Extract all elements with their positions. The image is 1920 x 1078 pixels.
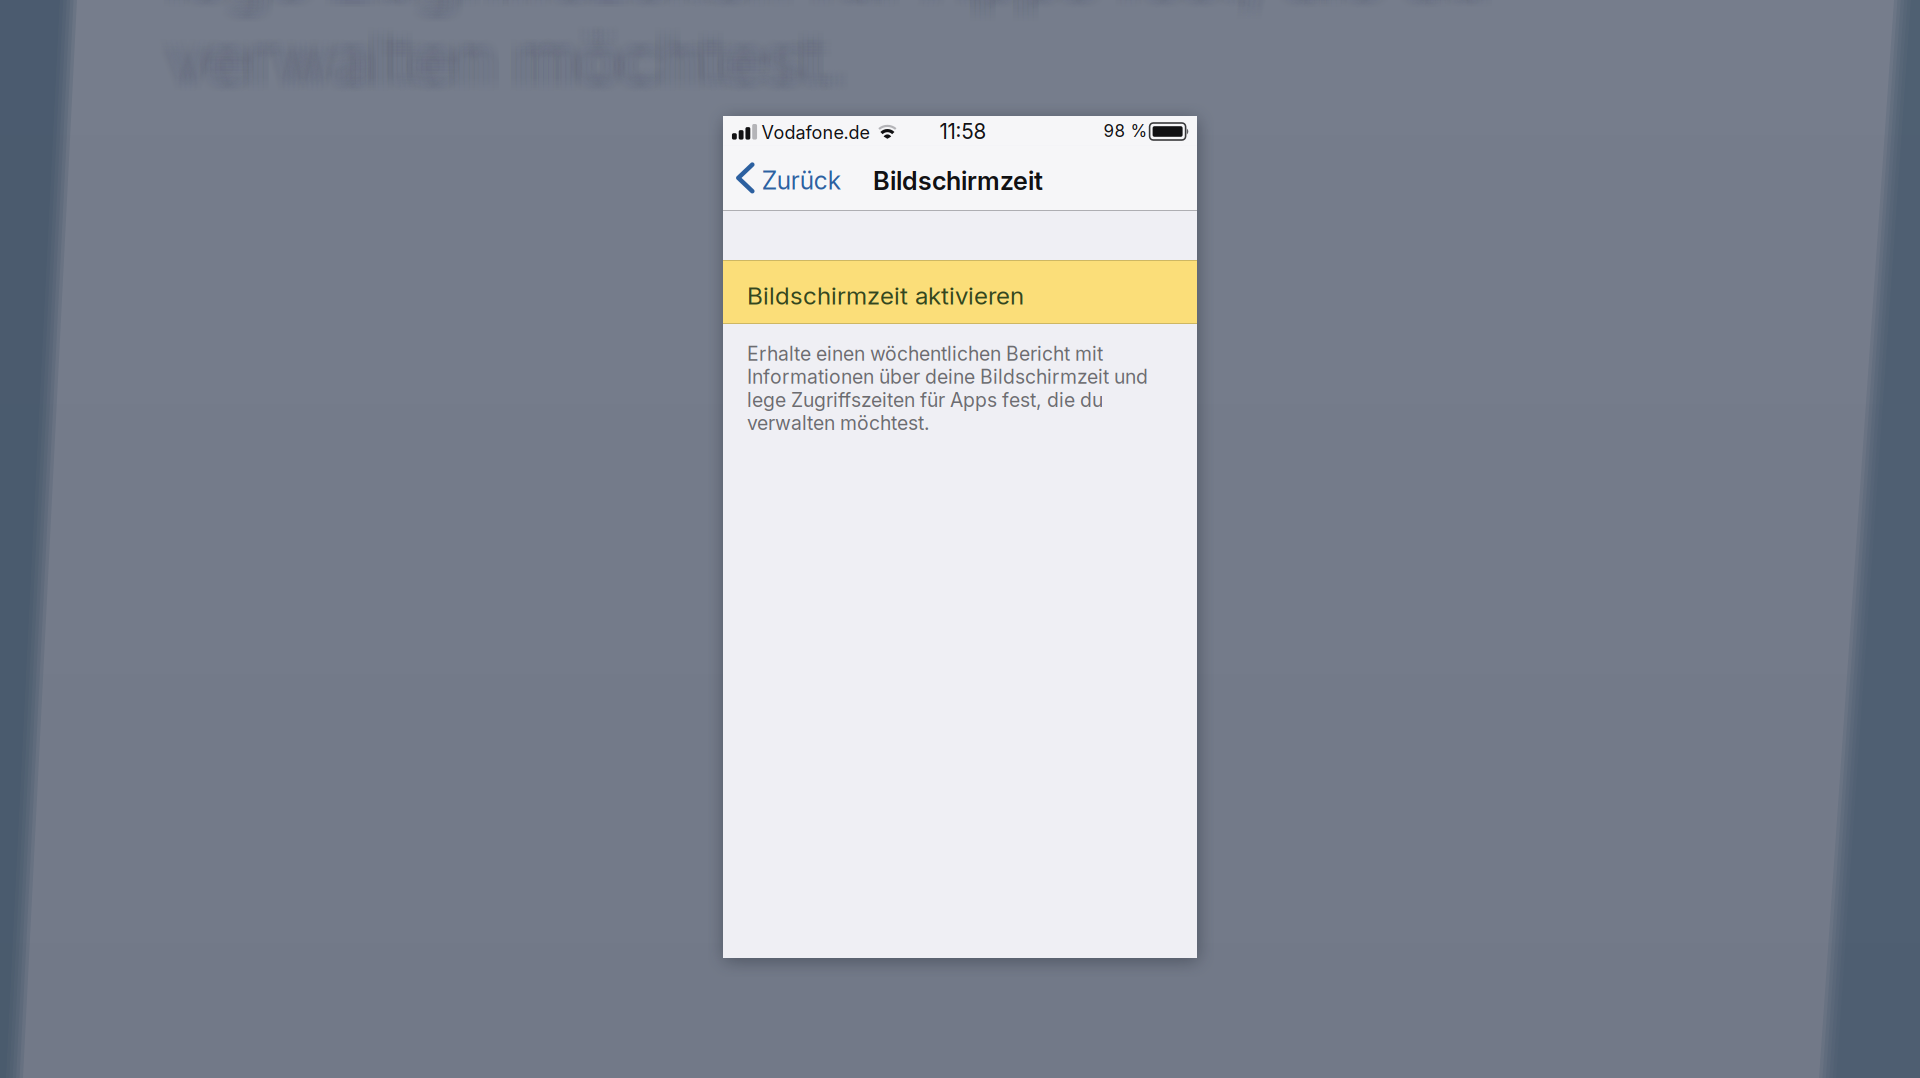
- staticText: verwalten möchtest.: [158, 13, 834, 99]
- staticText: verwalten möchtest.: [168, 10, 844, 95]
- staticText: verwalten möchtest.: [163, 22, 839, 108]
- staticText: 11:58: [939, 119, 986, 144]
- staticText: verwalten möchtest.: [163, 19, 839, 105]
- button[interactable]: Bildschirmzeit aktivieren: [723, 260, 1197, 324]
- staticText: verwalten möchtest.: [178, 13, 854, 99]
- staticText: Erhalte einen wöchentlichen Bericht mit: [747, 342, 1103, 365]
- staticText: verwalten möchtest.: [178, 10, 854, 95]
- staticText: Bildschirmzeit: [873, 165, 1043, 196]
- staticText: verwalten möchtest.: [173, 16, 849, 102]
- staticText: verwalten möchtest.: [178, 22, 854, 108]
- staticText: verwalten möchtest.: [168, 22, 844, 108]
- button[interactable]: Zurück: [723, 145, 855, 211]
- staticText: 98 %: [1103, 121, 1147, 141]
- staticText: verwalten möchtest.: [173, 10, 849, 95]
- staticText: Informationen über deine Bildschirmzeit …: [747, 365, 1148, 388]
- staticText: verwalten möchtest.: [173, 13, 849, 99]
- staticText: verwalten möchtest.: [158, 16, 834, 102]
- staticText: verwalten möchtest.: [158, 10, 834, 95]
- staticText: verwalten möchtest.: [747, 411, 930, 435]
- staticText: lege Zugriffszeiten für Apps fest, die d…: [747, 388, 1103, 412]
- staticText: verwalten möchtest.: [173, 22, 849, 108]
- staticText: verwalten möchtest.: [163, 10, 839, 95]
- staticText: verwalten möchtest.: [163, 13, 839, 99]
- staticText: verwalten möchtest.: [178, 19, 854, 105]
- staticText: verwalten möchtest.: [173, 19, 849, 105]
- staticText: verwalten möchtest.: [158, 19, 834, 105]
- staticText: Vodafone.de: [762, 122, 870, 143]
- staticText: verwalten möchtest.: [163, 16, 839, 102]
- staticText: verwalten möchtest.: [168, 13, 844, 99]
- staticText: verwalten möchtest.: [168, 16, 844, 102]
- staticText: Zurück: [762, 165, 841, 195]
- staticText: verwalten möchtest.: [178, 16, 854, 102]
- staticText: verwalten möchtest.: [158, 22, 834, 108]
- staticText: Bildschirmzeit aktivieren: [747, 281, 1024, 310]
- staticText: verwalten möchtest.: [168, 19, 844, 105]
